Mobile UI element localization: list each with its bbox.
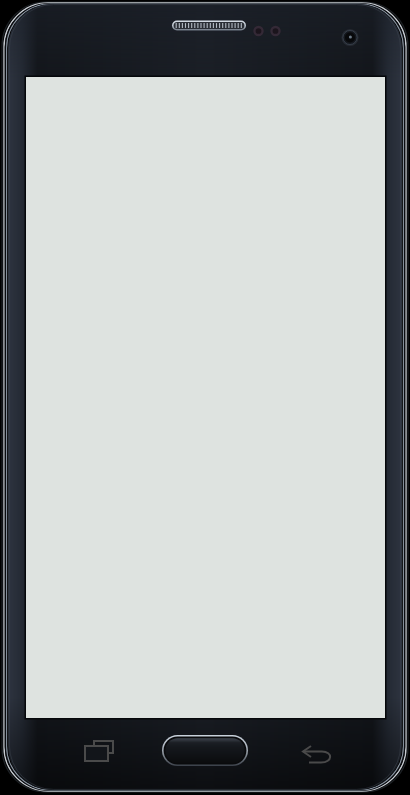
button[interactable]: Home (162, 735, 248, 766)
button[interactable]: Recent apps (78, 734, 120, 768)
button[interactable]: Back (296, 734, 340, 768)
